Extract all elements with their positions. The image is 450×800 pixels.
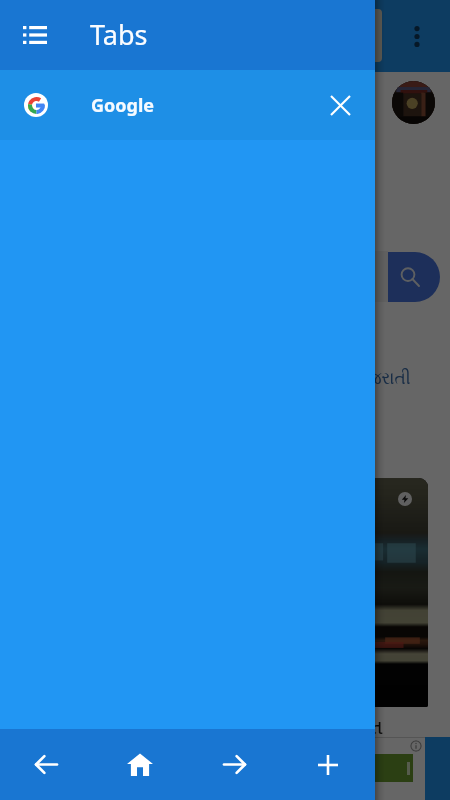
staticText: ગુજરાતી: [353, 370, 411, 387]
button[interactable]: Google: [0, 70, 375, 140]
staticText: સમાચાર સ્રોત: [290, 713, 383, 745]
button[interactable]: New tab: [281, 729, 375, 800]
button[interactable]: Article: [326, 478, 428, 707]
staticText: Google: [91, 93, 155, 118]
button[interactable]: Back: [0, 729, 93, 800]
button[interactable]: More options: [402, 21, 432, 51]
button[interactable]: Search: [388, 252, 440, 302]
button[interactable]: Forward: [187, 729, 281, 800]
button[interactable]: Ad info: [410, 740, 422, 752]
button[interactable]: Account: [392, 81, 435, 124]
button[interactable]: Tab list: [11, 11, 59, 59]
staticText: Tabs: [90, 16, 148, 53]
button[interactable]: Home: [93, 729, 187, 800]
button[interactable]: Close tab: [317, 82, 363, 128]
